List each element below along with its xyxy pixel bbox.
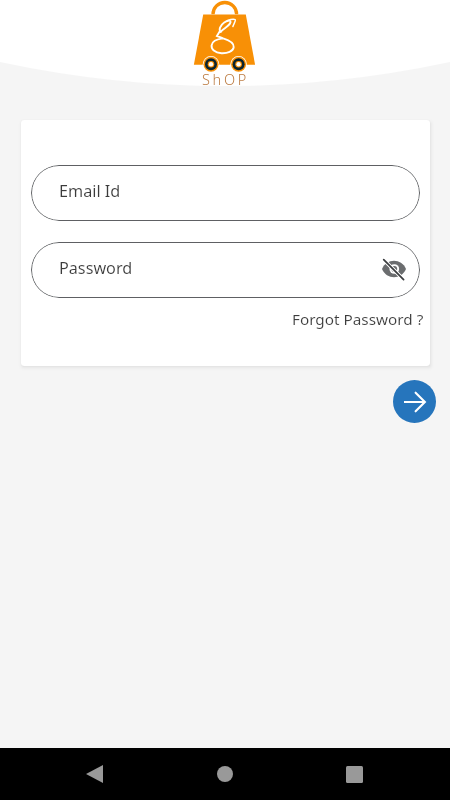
button[interactable]: Show password — [376, 252, 412, 288]
button[interactable]: Back — [72, 752, 116, 796]
button[interactable]: Submit — [393, 380, 436, 423]
button[interactable]: Recent apps — [332, 752, 376, 796]
button[interactable]: Home — [203, 752, 247, 796]
staticText: ShOP — [202, 69, 250, 89]
staticText: Email Id — [59, 180, 121, 202]
button[interactable]: Email Id — [31, 165, 420, 221]
button[interactable]: Password — [31, 242, 420, 298]
staticText: Password — [59, 257, 133, 279]
button[interactable]: Forgot Password ? — [292, 305, 430, 334]
